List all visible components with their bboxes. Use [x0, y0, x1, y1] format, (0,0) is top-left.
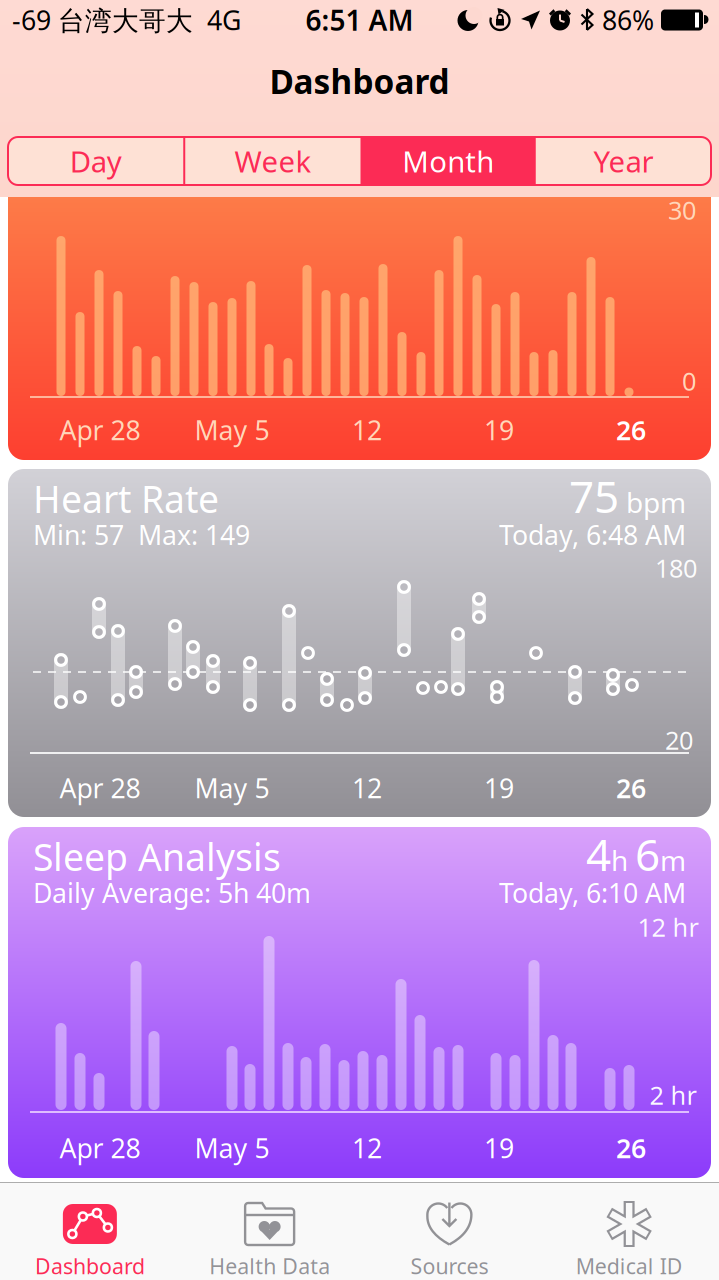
staticText: m: [660, 842, 686, 879]
staticText: Day: [70, 141, 122, 180]
staticText: Heart Rate: [33, 474, 219, 523]
button[interactable]: 30: [8, 197, 711, 460]
button[interactable]: Sleep Analysis: [8, 827, 711, 1178]
staticText: 19: [484, 412, 514, 448]
staticText: 86%: [602, 2, 654, 38]
staticText: Year: [593, 141, 653, 180]
staticText: 6:51 AM: [305, 1, 413, 39]
button[interactable]: Year: [536, 137, 711, 185]
staticText: 180: [655, 551, 697, 585]
staticText: Health Data: [209, 1252, 330, 1280]
button[interactable]: Week: [185, 137, 360, 185]
staticText: 26: [616, 770, 646, 806]
staticText: 6: [635, 825, 660, 883]
staticText: 75: [569, 467, 619, 525]
staticText: Month: [402, 141, 494, 180]
staticText: 2 hr: [649, 1078, 696, 1112]
staticText: 12 hr: [637, 910, 698, 944]
staticText: 0: [682, 364, 696, 398]
staticText: 19: [484, 1130, 514, 1166]
staticText: Week: [234, 141, 311, 180]
staticText: bpm: [619, 484, 686, 521]
button[interactable]: Heart Rate: [8, 469, 711, 817]
button[interactable]: Health Data: [180, 1202, 360, 1276]
staticText: 12: [352, 1130, 382, 1166]
staticText: Daily Average: 5h 40m: [33, 875, 311, 910]
staticText: Apr 28: [59, 770, 140, 806]
staticText: Sleep Analysis: [33, 832, 281, 881]
staticText: May 5: [194, 412, 269, 448]
staticText: Apr 28: [59, 412, 140, 448]
button[interactable]: Day: [8, 137, 183, 185]
staticText: 12: [352, 770, 382, 806]
staticText: 12: [352, 412, 382, 448]
staticText: Sources: [410, 1252, 488, 1280]
staticText: Medical ID: [576, 1252, 683, 1280]
staticText: 4: [586, 825, 611, 883]
staticText: 30: [668, 193, 696, 227]
staticText: Min: 57 Max: 149: [33, 517, 250, 552]
staticText: Dashboard: [269, 59, 449, 103]
button[interactable]: Dashboard: [0, 1202, 180, 1276]
staticText: 20: [665, 723, 693, 757]
staticText: May 5: [194, 1130, 269, 1166]
staticText: 26: [616, 412, 646, 448]
staticText: -69 台湾大哥大 4G: [12, 2, 241, 38]
button[interactable]: Sources: [359, 1202, 539, 1276]
staticText: May 5: [194, 770, 269, 806]
staticText: Apr 28: [59, 1130, 140, 1166]
button[interactable]: Month: [360, 137, 536, 185]
staticText: 26: [616, 1130, 646, 1166]
staticText: h: [611, 842, 635, 879]
staticText: Dashboard: [35, 1252, 145, 1280]
staticText: Today, 6:10 AM: [499, 875, 686, 910]
staticText: Today, 6:48 AM: [499, 517, 686, 552]
button[interactable]: Medical ID: [539, 1202, 719, 1276]
staticText: 19: [484, 770, 514, 806]
